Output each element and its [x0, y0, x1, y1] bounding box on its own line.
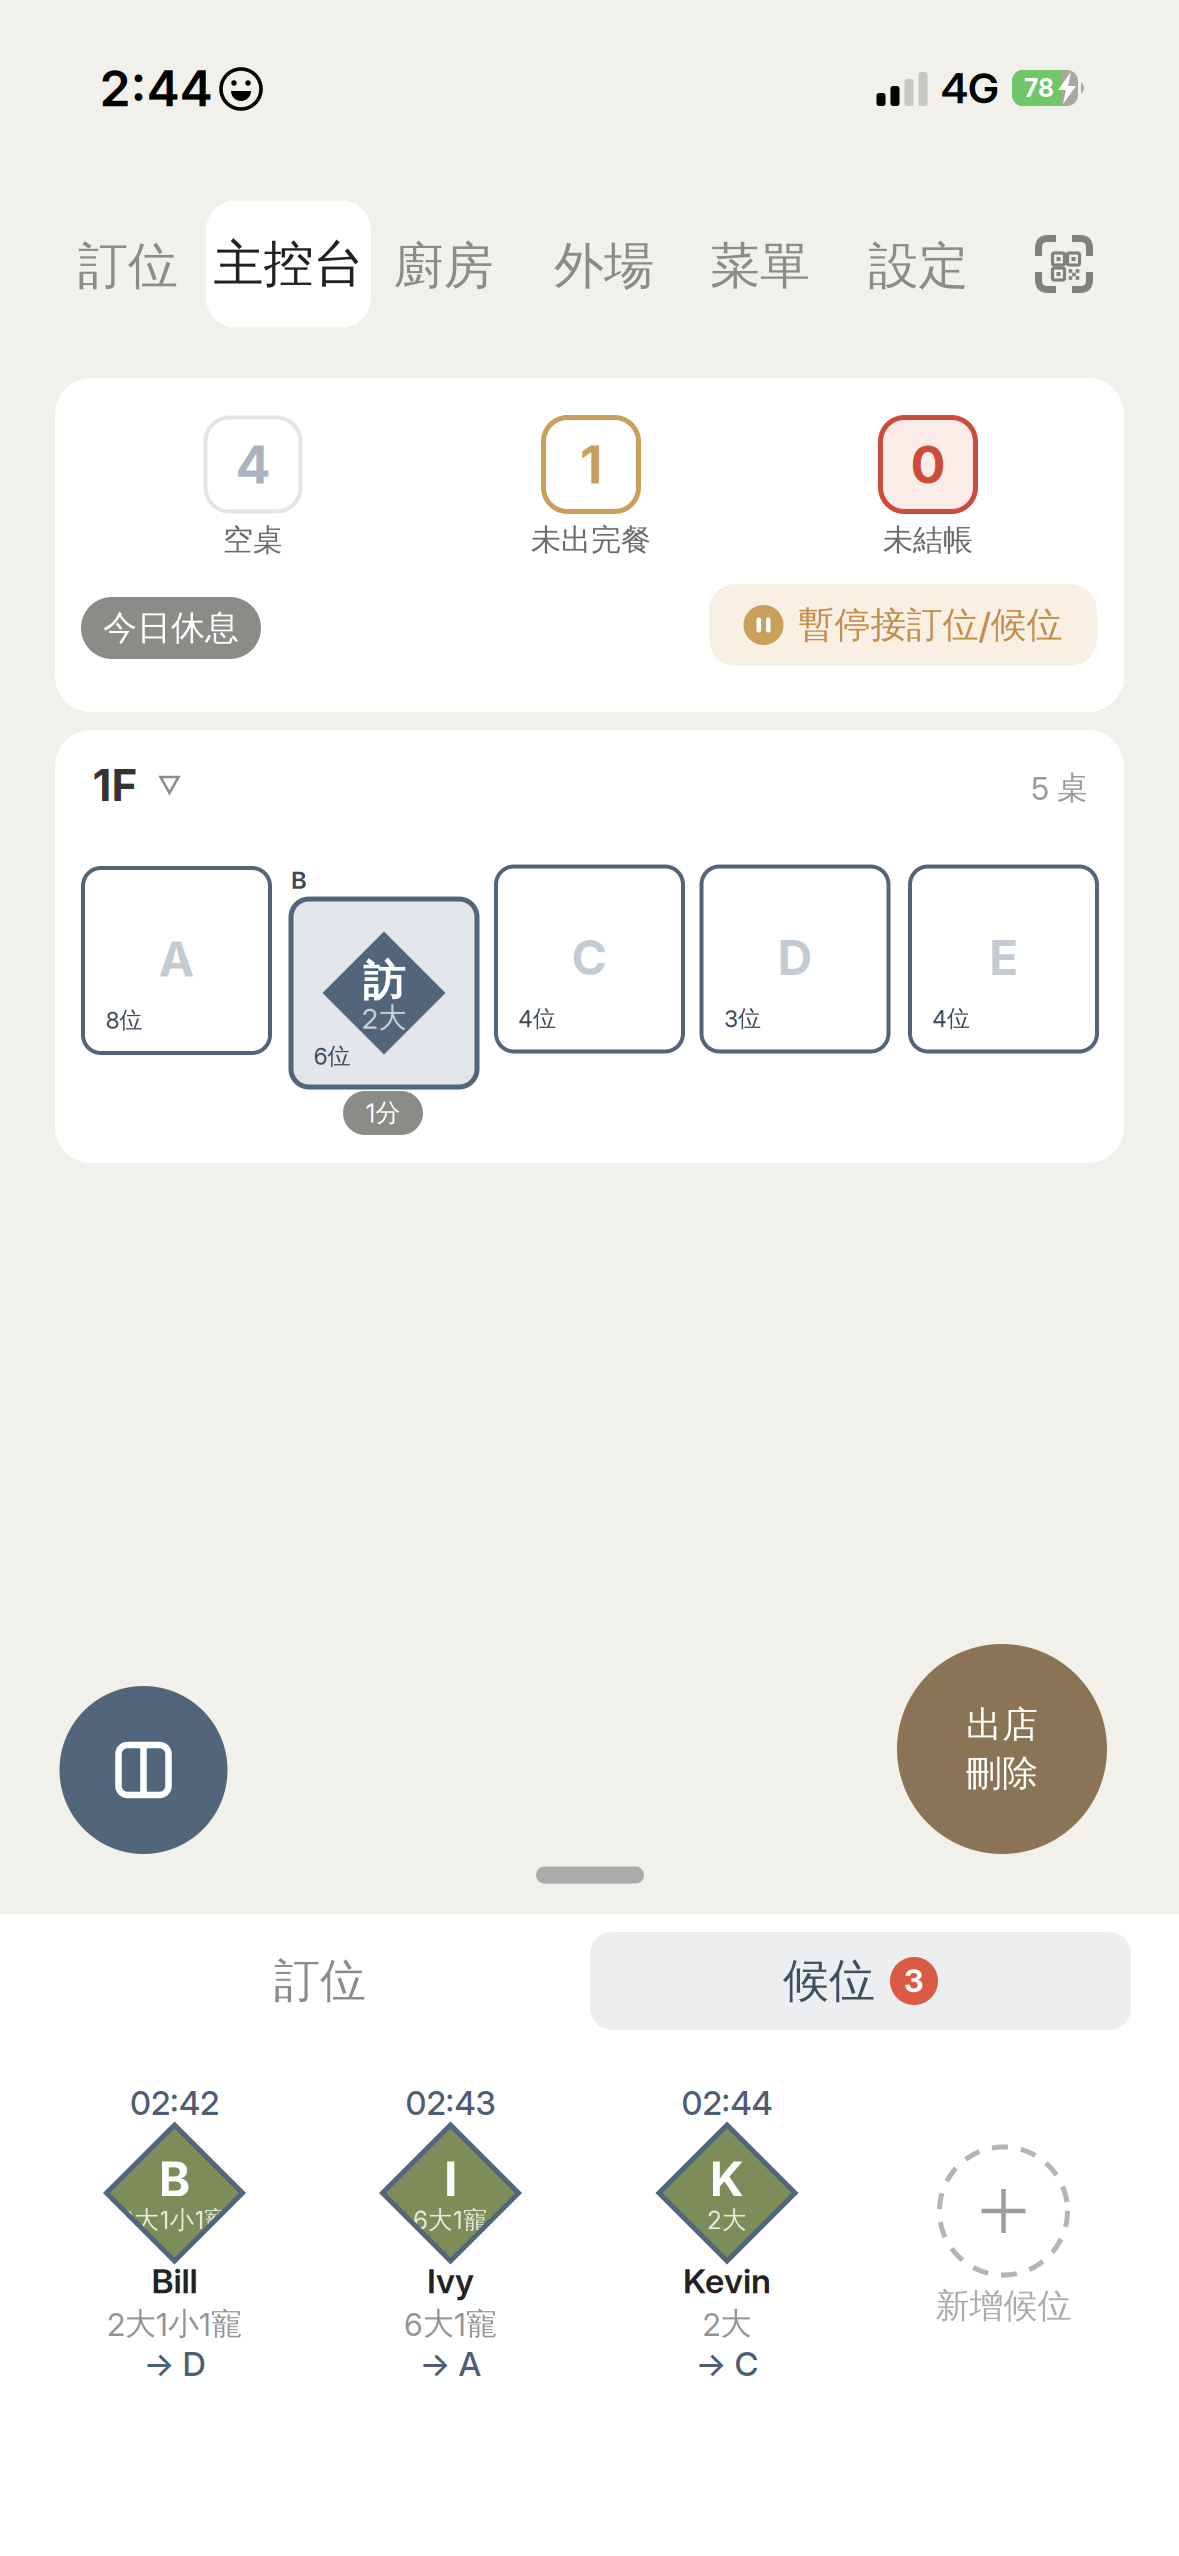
staticText: 2:44: [99, 58, 212, 118]
staticText: 主控台: [213, 232, 363, 295]
staticText: 未結帳: [883, 521, 973, 559]
button[interactable]: 訪: [291, 899, 477, 1087]
button[interactable]: 新增候位: [893, 2089, 1113, 2349]
button[interactable]: E: [910, 866, 1097, 1051]
button[interactable]: D: [701, 866, 888, 1051]
staticText: 2大: [702, 2304, 751, 2344]
staticText: → D: [143, 2344, 205, 2384]
button[interactable]: 1F: [92, 758, 179, 812]
button[interactable]: 1: [543, 417, 638, 511]
staticText: K: [709, 2150, 744, 2208]
staticText: 1: [580, 433, 602, 496]
staticText: 5 桌: [1031, 768, 1088, 808]
button[interactable]: 訂位: [274, 1952, 366, 2010]
staticText: 外場: [554, 234, 654, 297]
staticText: 2大: [707, 2205, 747, 2235]
staticText: 1F: [92, 758, 137, 812]
button[interactable]: 設定: [868, 234, 968, 297]
button[interactable]: 分割檢視: [59, 1686, 227, 1854]
staticText: 設定: [868, 234, 968, 297]
staticText: 02:43: [405, 2083, 495, 2123]
staticText: 2大: [361, 1000, 406, 1036]
button[interactable]: 菜單: [710, 234, 810, 297]
staticText: Ivy: [427, 2260, 474, 2301]
staticText: 2大1小1寵: [119, 2205, 229, 2235]
staticText: 候位: [783, 1952, 875, 2010]
button[interactable]: 今日休息: [81, 597, 261, 659]
staticText: 訪: [363, 954, 405, 1007]
staticText: 3: [904, 1962, 924, 2000]
staticText: 菜單: [710, 234, 810, 297]
staticText: 刪除: [966, 1750, 1038, 1796]
button[interactable]: 主控台: [206, 200, 371, 327]
button[interactable]: 候位: [590, 1932, 1131, 2030]
button[interactable]: 4: [205, 417, 300, 511]
staticText: 空桌: [223, 521, 283, 559]
staticText: 廚房: [393, 234, 493, 297]
staticText: → C: [695, 2344, 758, 2384]
staticText: 02:42: [130, 2083, 219, 2123]
staticText: 訂位: [274, 1952, 366, 2010]
staticText: A: [158, 930, 194, 988]
staticText: 4G: [941, 63, 999, 113]
button[interactable]: 外場: [554, 234, 654, 297]
staticText: → A: [419, 2344, 481, 2384]
button[interactable]: 掃描 QR Code: [1035, 235, 1093, 293]
staticText: Bill: [151, 2260, 197, 2301]
staticText: 4位: [932, 1004, 970, 1033]
staticText: E: [989, 928, 1018, 987]
staticText: 8位: [105, 1005, 142, 1034]
button[interactable]: 0: [880, 417, 975, 511]
button[interactable]: 出店: [897, 1644, 1107, 1854]
button[interactable]: 02:44: [617, 2075, 837, 2389]
button[interactable]: C: [496, 866, 683, 1051]
staticText: 4: [235, 433, 270, 496]
button[interactable]: 02:42: [64, 2075, 284, 2389]
staticText: 4位: [518, 1004, 556, 1033]
staticText: 今日休息: [103, 607, 239, 649]
staticText: 未出完餐: [531, 521, 651, 559]
staticText: 新增候位: [935, 2285, 1071, 2327]
staticText: D: [777, 928, 812, 987]
staticText: 1分: [365, 1097, 400, 1129]
button[interactable]: 暫停接訂位/候位: [709, 584, 1097, 666]
staticText: 02:44: [681, 2083, 772, 2123]
staticText: I: [444, 2150, 457, 2208]
staticText: 0: [910, 433, 945, 496]
staticText: Kevin: [683, 2260, 771, 2301]
staticText: 2大1小1寵: [107, 2304, 242, 2344]
staticText: 6大1寵: [413, 2205, 488, 2235]
staticText: 3位: [724, 1004, 761, 1033]
staticText: 6大1寵: [404, 2304, 497, 2344]
staticText: B: [291, 865, 307, 894]
button[interactable]: 02:43: [340, 2075, 560, 2389]
button[interactable]: 廚房: [393, 234, 493, 297]
staticText: 78: [1024, 73, 1054, 103]
staticText: 暫停接訂位/候位: [798, 602, 1062, 648]
staticText: C: [571, 928, 607, 987]
staticText: 出店: [966, 1702, 1038, 1747]
staticText: 6位: [313, 1041, 350, 1070]
staticText: 訂位: [78, 234, 178, 297]
button[interactable]: A: [83, 868, 270, 1053]
button[interactable]: 訂位: [78, 234, 178, 297]
staticText: B: [158, 2150, 190, 2208]
